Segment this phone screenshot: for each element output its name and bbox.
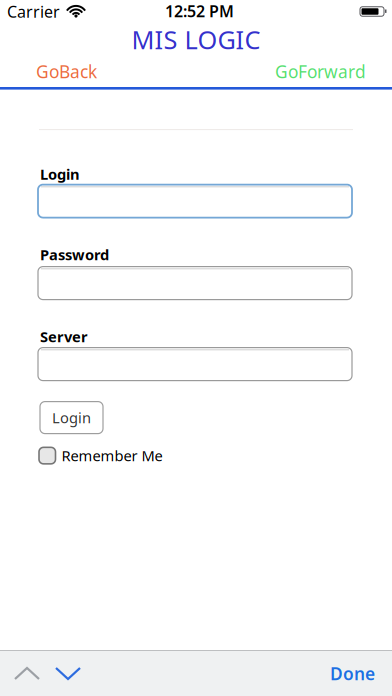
button[interactable]: GoForward	[275, 60, 366, 83]
button[interactable]: Previous field	[14, 666, 40, 680]
button[interactable]: Login	[40, 402, 103, 434]
staticText: Login	[40, 164, 80, 184]
staticText: GoForward	[275, 60, 366, 83]
button[interactable]: GoBack	[36, 60, 97, 83]
staticText: Login	[52, 408, 91, 427]
button[interactable]: Login text field	[38, 185, 352, 218]
button[interactable]: Done	[330, 662, 375, 685]
staticText: Password	[40, 245, 109, 264]
staticText: Carrier	[7, 1, 60, 22]
staticText: Remember Me	[61, 446, 162, 465]
button[interactable]: Next field	[55, 666, 81, 680]
button[interactable]: Server text field	[38, 348, 352, 381]
staticText: MIS LOGIC	[131, 23, 260, 56]
staticText: Done	[330, 662, 375, 685]
button[interactable]: Password text field	[38, 267, 352, 300]
staticText: 12:52 PM	[165, 0, 234, 22]
staticText: GoBack	[36, 60, 97, 83]
button[interactable]: Remember Me	[39, 447, 162, 465]
staticText: Server	[40, 327, 88, 346]
